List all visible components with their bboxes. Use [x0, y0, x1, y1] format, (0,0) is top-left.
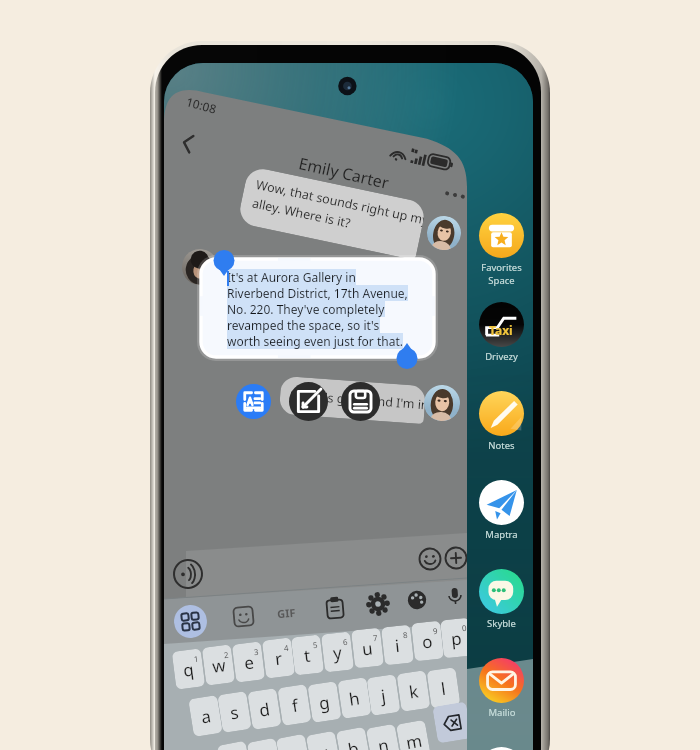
- staticText: g: [317, 690, 332, 715]
- staticText: Favorites Space: [481, 261, 522, 287]
- staticText: 8: [402, 629, 408, 640]
- button[interactable]: a: [188, 695, 223, 737]
- button[interactable]: Notes: [471, 391, 532, 452]
- button[interactable]: c: [276, 734, 311, 750]
- button[interactable]: q: [172, 648, 205, 690]
- button[interactable]: Mailio: [471, 658, 532, 719]
- staticText: It's at Aurora Gallery in: [227, 269, 356, 285]
- button[interactable]: w: [202, 644, 235, 686]
- staticText: p: [450, 626, 463, 650]
- staticText: r: [274, 646, 284, 670]
- staticText: No. 220. They've completely: [227, 301, 385, 317]
- staticText: Emily Carter: [297, 152, 391, 194]
- staticText: a: [199, 704, 213, 729]
- button[interactable]: h: [337, 677, 372, 719]
- staticText: Drivezy: [485, 350, 518, 363]
- staticText: Mailio: [488, 706, 516, 719]
- button[interactable]: e: [232, 641, 265, 683]
- button[interactable]: z: [217, 741, 252, 750]
- button[interactable]: k: [396, 670, 431, 712]
- button[interactable]: y: [321, 631, 354, 673]
- staticText: b: [346, 736, 361, 750]
- button[interactable]: Save: [341, 382, 380, 421]
- staticText: i: [394, 634, 401, 657]
- staticText: k: [407, 679, 421, 703]
- staticText: GIF: [276, 605, 296, 620]
- button[interactable]: o: [411, 621, 444, 661]
- staticText: 6: [342, 636, 348, 647]
- staticText: Sounds good and I'm in!: [290, 386, 425, 413]
- staticText: m: [404, 729, 424, 750]
- staticText: 2: [223, 649, 229, 660]
- staticText: o: [421, 629, 434, 653]
- staticText: q: [182, 657, 195, 682]
- button[interactable]: App: [479, 747, 524, 750]
- button[interactable]: f: [277, 684, 312, 726]
- staticText: revamped the space, so it's: [227, 317, 380, 333]
- staticText: 1: [193, 653, 199, 664]
- staticText: w: [211, 653, 227, 678]
- button[interactable]: Edit: [289, 382, 328, 421]
- staticText: v: [317, 740, 330, 750]
- button[interactable]: n: [366, 724, 401, 750]
- staticText: s: [228, 700, 241, 724]
- staticText: t: [303, 644, 312, 667]
- staticText: 9: [432, 625, 438, 636]
- button[interactable]: Taxi: [471, 302, 532, 363]
- staticText: 7: [372, 632, 378, 643]
- button[interactable]: r: [262, 637, 295, 679]
- button[interactable]: b: [336, 727, 371, 750]
- staticText: u: [361, 636, 374, 661]
- staticText: Maptra: [485, 528, 518, 541]
- staticText: Riverbend District, 17th Avenue,: [227, 285, 408, 301]
- staticText: n: [376, 733, 391, 750]
- button[interactable]: p: [440, 618, 473, 658]
- button[interactable]: x: [247, 738, 282, 750]
- staticText: h: [347, 686, 362, 711]
- staticText: 3: [253, 646, 259, 657]
- staticText: 5: [312, 639, 318, 650]
- button[interactable]: i: [381, 624, 414, 665]
- button[interactable]: d: [247, 688, 282, 730]
- button[interactable]: s: [217, 691, 252, 733]
- staticText: d: [257, 697, 272, 722]
- button[interactable]: t: [291, 634, 324, 675]
- button[interactable]: v: [306, 731, 341, 750]
- staticText: alley. Where is it?: [251, 194, 352, 232]
- staticText: l: [439, 677, 448, 700]
- staticText: Taxi: [489, 322, 513, 338]
- staticText: Notes: [488, 439, 515, 452]
- staticText: 4: [283, 642, 289, 653]
- staticText: j: [379, 684, 388, 707]
- staticText: 10:08: [184, 93, 218, 117]
- staticText: y: [332, 641, 343, 664]
- staticText: Wow, that sounds right up my: [254, 176, 425, 228]
- button[interactable]: Backspace: [432, 701, 472, 743]
- button[interactable]: Scan text: [236, 384, 271, 419]
- staticText: worth seeing even just for that.: [227, 333, 403, 349]
- button[interactable]: Maptra: [471, 480, 532, 541]
- button[interactable]: g: [307, 681, 342, 723]
- staticText: e: [243, 650, 255, 674]
- staticText: 0: [461, 622, 467, 633]
- button[interactable]: l: [426, 667, 460, 709]
- button[interactable]: Keyboard apps: [172, 603, 208, 639]
- staticText: Skyble: [487, 617, 516, 630]
- button[interactable]: Favorites Space: [471, 213, 532, 287]
- button[interactable]: j: [366, 674, 401, 716]
- button[interactable]: m: [396, 720, 431, 750]
- staticText: f: [290, 694, 300, 717]
- button[interactable]: u: [351, 627, 384, 668]
- button[interactable]: Skyble: [471, 569, 532, 630]
